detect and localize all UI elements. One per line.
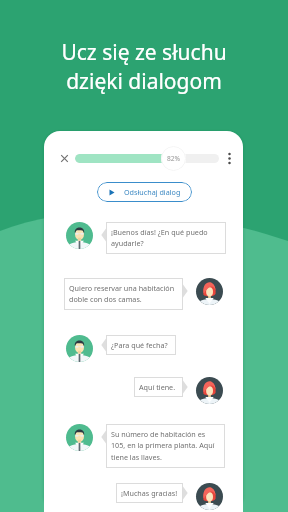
- staticText: Su número de habitación es 105, en la pr…: [111, 429, 215, 463]
- staticText: Aquí tiene.: [139, 382, 176, 392]
- button[interactable]: Close: [56, 150, 73, 167]
- button[interactable]: Odsłuchaj dialog: [97, 182, 192, 202]
- staticText: Quiero reservar una habitación doble con…: [69, 283, 175, 305]
- staticText: dzięki dialogom: [66, 67, 222, 96]
- staticText: Odsłuchaj dialog: [124, 187, 181, 197]
- staticText: 82%: [167, 154, 181, 163]
- staticText: ¡Muchas gracias!: [121, 488, 178, 498]
- staticText: ¿Para qué fecha?: [111, 340, 168, 350]
- button[interactable]: More options: [221, 150, 238, 167]
- staticText: Ucz się ze słuchu: [61, 38, 227, 67]
- staticText: ¡Buenos días! ¿En qué puedo ayudarle?: [111, 227, 208, 249]
